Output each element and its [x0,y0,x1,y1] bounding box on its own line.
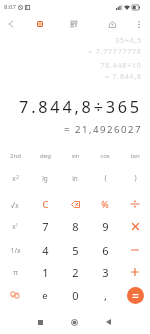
button[interactable] [120,239,150,261]
staticText: deg [40,152,51,160]
staticText: x [12,174,16,183]
button[interactable]: cos [90,145,120,167]
button[interactable]: e [30,282,60,308]
staticText: 2 [16,174,19,180]
button[interactable]: ( [90,167,120,189]
staticText: = 21,4926027 [64,123,142,136]
button[interactable]: 1/x [0,239,30,261]
button[interactable]: lg [30,167,60,189]
staticText: 1 [42,265,49,280]
button[interactable]: 9 [90,215,120,237]
button[interactable]: x [0,193,30,215]
button[interactable]: Backspace [60,193,90,215]
button[interactable]: 4 [30,239,60,261]
staticText: e [42,289,48,302]
staticText: 8 [72,219,79,234]
button[interactable]: sin [60,145,90,167]
staticText: tan [130,152,140,160]
button[interactable]: Back [96,310,120,334]
button[interactable]: 0 [60,282,90,308]
button[interactable]: Recents [28,310,52,334]
staticText: 3 [102,265,109,280]
button[interactable]: % [90,193,120,215]
button[interactable] [120,193,150,215]
staticText: 2 [72,265,79,280]
button[interactable]: 8 [60,215,90,237]
staticText: x [15,201,19,210]
button[interactable]: π [0,261,30,283]
button[interactable]: , [90,282,120,308]
staticText: 8:07 [4,3,16,11]
button[interactable]: Mortgage calculator [104,14,121,34]
staticText: 7.844,8÷365 [19,96,142,118]
button[interactable]: 7 [30,215,60,237]
button[interactable]: ln [60,167,90,189]
staticText: % [101,198,109,210]
button[interactable]: deg [30,145,60,167]
button[interactable]: x [0,167,30,189]
staticText: π [13,267,18,277]
staticText: C [42,198,49,211]
staticText: cos [100,152,110,160]
button[interactable]: 3 [90,261,120,283]
staticText: 78.448+10 [100,61,142,71]
button[interactable]: Calculator [31,14,48,34]
button[interactable]: 2 [60,261,90,283]
staticText: 1/x [10,246,21,255]
button[interactable]: Convert [0,282,30,308]
staticText: 5 [72,243,79,258]
staticText: 9 [102,219,109,234]
button[interactable]: 1 [30,261,60,283]
button[interactable]: Equals [120,282,150,308]
button[interactable]: More options [131,14,147,34]
button[interactable]: ) [120,167,150,189]
staticText: 35+4,5 [115,36,142,46]
staticText: 0 [72,288,79,303]
staticText: sin [71,152,80,160]
staticText: ) [134,173,137,183]
button[interactable]: x [0,215,30,237]
staticText: 7 [42,219,49,234]
button[interactable]: 2nd [0,145,30,167]
button[interactable]: 6 [90,239,120,261]
staticText: 2nd [10,152,21,160]
button[interactable]: C [30,193,60,215]
staticText: ln [72,174,78,183]
button[interactable]: 5 [60,239,90,261]
staticText: lg [42,174,48,183]
staticText: = 7.844,8 [105,72,142,82]
button[interactable]: Unit converter [65,14,82,34]
button[interactable]: tan [120,145,150,167]
staticText: = 7,77777778 [88,47,142,57]
staticText: ( [104,173,107,183]
button[interactable] [120,215,150,237]
button[interactable]: Home [62,310,86,334]
staticText: ! [16,222,18,228]
button[interactable] [120,261,150,283]
staticText: , [104,288,107,303]
staticText: 4 [42,243,49,258]
button[interactable]: Back [2,14,19,34]
staticText: x [12,222,16,231]
staticText: 6 [102,243,109,258]
